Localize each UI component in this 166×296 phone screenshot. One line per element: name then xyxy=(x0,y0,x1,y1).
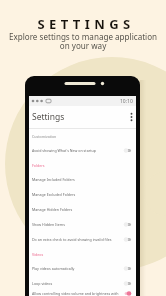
staticText: Loop videos xyxy=(32,281,122,286)
staticText: Manage Excluded Folders xyxy=(32,192,122,197)
button[interactable]: Loop videos xyxy=(29,276,136,291)
staticText: Settings xyxy=(32,111,65,123)
staticText: Videos xyxy=(32,252,44,257)
button[interactable]: Manage Included Folders xyxy=(29,172,136,187)
staticText: Explore settings to manage application o… xyxy=(0,31,166,51)
button[interactable]: Show Hidden Items xyxy=(29,217,136,232)
button[interactable]: More options xyxy=(124,111,136,123)
staticText: Manage Included Folders xyxy=(32,177,122,182)
button[interactable]: Manage Hidden Folders xyxy=(29,202,136,217)
button[interactable]: Allow controlling video volume and brigh… xyxy=(29,291,136,296)
staticText: Manage Hidden Folders xyxy=(32,207,122,212)
button[interactable]: Avoid showing What's New on startup xyxy=(29,143,136,158)
staticText: Play videos automatically xyxy=(32,266,122,271)
staticText: Avoid showing What's New on startup xyxy=(32,148,122,153)
button[interactable]: Manage Excluded Folders xyxy=(29,187,136,202)
staticText: SETTINGS xyxy=(3,15,166,33)
staticText: Show Hidden Items xyxy=(32,222,122,227)
staticText: Folders xyxy=(32,163,45,168)
staticText: Do an extra check to avoid showing inval… xyxy=(32,237,122,242)
staticText: 10:10 xyxy=(120,98,133,105)
staticText: Allow controlling video volume and brigh… xyxy=(32,291,122,296)
button[interactable]: Play videos automatically xyxy=(29,261,136,276)
staticText: Customization xyxy=(32,134,57,139)
button[interactable]: Do an extra check to avoid showing inval… xyxy=(29,232,136,247)
